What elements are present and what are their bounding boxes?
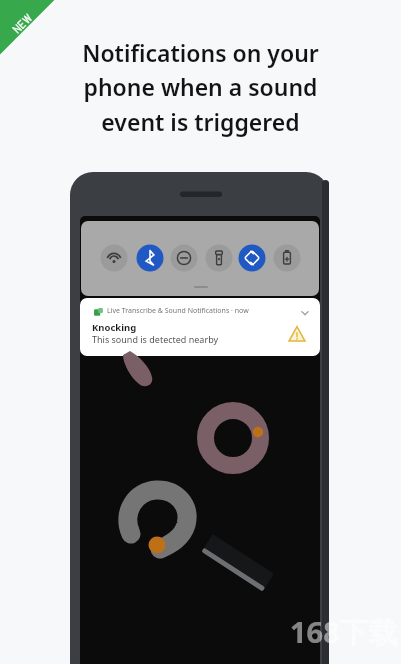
staticText: 168下载	[290, 612, 398, 652]
staticText: This sound is detected nearby	[92, 333, 219, 345]
staticText: Knocking	[92, 321, 137, 334]
staticText: Live Transcribe & Sound Notifications · …	[107, 306, 249, 316]
staticText: Notifications on your phone when a sound…	[82, 37, 319, 138]
button[interactable]: New	[0, 0, 64, 64]
button[interactable]: Live Transcribe & Sound Notifications · …	[80, 298, 320, 356]
